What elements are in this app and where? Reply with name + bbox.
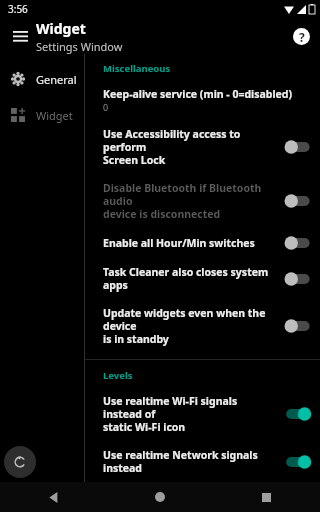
button[interactable]: Enable all Hour/Min switches (85, 228, 320, 258)
staticText: Levels (103, 369, 133, 382)
staticText: 3:56 (8, 2, 28, 16)
button[interactable]: Toggle off (282, 193, 312, 209)
button[interactable]: Widget (0, 102, 84, 128)
staticText: ? (299, 29, 305, 45)
button[interactable]: Use Accessibility access to perform Scre… (85, 120, 320, 174)
staticText: Widget (36, 19, 86, 38)
button[interactable]: Toggle off (282, 235, 312, 251)
staticText: Use realtime Network signals instead of … (103, 448, 276, 475)
staticText: Settings Window (36, 39, 123, 54)
staticText: Use Accessibility access to perform Scre… (103, 127, 276, 167)
button[interactable]: Use realtime Network signals instead of … (85, 441, 320, 482)
button[interactable]: Keep-alive service (min - 0=disabled) (85, 80, 320, 120)
button[interactable]: Restore defaults (4, 446, 36, 478)
button[interactable]: Toggle off (282, 318, 312, 334)
staticText: Keep-alive service (min - 0=disabled) (103, 87, 292, 101)
button[interactable]: General (0, 66, 84, 92)
staticText: Widget (36, 108, 73, 123)
staticText: Update widgets even when the device is i… (103, 306, 276, 346)
button[interactable]: Toggle off (282, 271, 312, 287)
button[interactable]: Back (0, 482, 106, 512)
button[interactable]: Use realtime Wi-Fi signals instead of st… (85, 387, 320, 441)
staticText: Use realtime Wi-Fi signals instead of st… (103, 394, 276, 434)
button[interactable]: Open navigation menu (6, 22, 34, 50)
button[interactable]: Toggle off (282, 139, 312, 155)
button[interactable]: Update widgets even when the device is i… (85, 299, 320, 353)
button[interactable]: Home (106, 482, 213, 512)
button[interactable]: Recent apps (213, 482, 320, 512)
button[interactable]: Task Cleaner also closes system apps (85, 258, 320, 299)
staticText: Task Cleaner also closes system apps (103, 265, 276, 292)
staticText: Miscellaneous (103, 62, 171, 75)
staticText: Disable Bluetooth if Bluetooth audio dev… (103, 181, 276, 221)
staticText: Enable all Hour/Min switches (103, 236, 255, 250)
staticText: General (36, 72, 77, 87)
button[interactable]: Toggle on (282, 454, 312, 470)
button[interactable]: Toggle on (282, 406, 312, 422)
button[interactable]: Help (288, 23, 314, 49)
staticText: 0 (103, 101, 109, 113)
button[interactable]: Disable Bluetooth if Bluetooth audio dev… (85, 174, 320, 228)
